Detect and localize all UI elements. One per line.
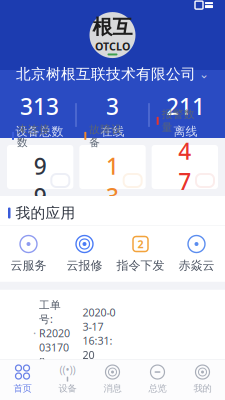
button[interactable]: Scan QR code: [193, 0, 225, 11]
staticText: 471: [178, 136, 191, 226]
staticText: 2: [137, 237, 143, 251]
staticText: 消息: [103, 382, 121, 394]
button[interactable]: 故障设备: [79, 145, 146, 189]
staticText: 未连接数: [17, 123, 50, 149]
staticText: 设备: [58, 382, 76, 394]
button[interactable]: 报警数量: [152, 145, 218, 189]
button[interactable]: 赤焱云: [168, 235, 224, 273]
button[interactable]: 云服务: [0, 235, 56, 273]
button[interactable]: 我的: [180, 364, 225, 394]
staticText: 3: [106, 91, 119, 121]
button[interactable]: 未连接数: [7, 145, 73, 189]
button[interactable]: 总览: [135, 364, 180, 394]
staticText: 报警数量: [162, 108, 195, 134]
button[interactable]: 2: [112, 235, 168, 273]
button[interactable]: ▲: [0, 290, 225, 400]
button[interactable]: 北京树根互联技术有限公司: [10, 58, 215, 83]
button[interactable]: 首页: [0, 364, 45, 394]
staticText: 云服务: [10, 258, 46, 273]
staticText: 设备总数: [15, 124, 63, 139]
button[interactable]: ((•)): [45, 364, 90, 394]
button[interactable]: 云报修: [56, 235, 112, 273]
staticText: ▲: [12, 361, 24, 379]
staticText: 离线: [173, 124, 197, 139]
staticText: 313: [20, 91, 59, 121]
staticText: 首页: [13, 382, 31, 394]
staticText: OTCLO: [95, 39, 130, 53]
button[interactable]: 211: [149, 91, 221, 139]
staticText: 99: [34, 151, 47, 211]
staticText: 工单号: R2020031700···: [39, 373, 70, 400]
staticText: 故障设备: [89, 123, 122, 149]
button[interactable]: 消息: [90, 364, 135, 394]
staticText: ·: [33, 326, 36, 342]
staticText: 2020-03-17 16:31:04: [82, 380, 115, 400]
staticText: 根互: [92, 15, 132, 39]
staticText: 我的: [193, 382, 211, 394]
staticText: 在线: [100, 124, 124, 139]
staticText: 赤焱云: [178, 258, 214, 273]
staticText: 13: [106, 151, 119, 211]
staticText: 211: [166, 91, 205, 121]
staticText: ((•)): [59, 362, 75, 377]
staticText: 总览: [148, 382, 166, 394]
staticText: 工单号: R2020031700···: [39, 299, 70, 369]
button[interactable]: 3: [76, 91, 148, 139]
staticText: ⌄: [199, 67, 209, 81]
staticText: 北京树根互联技术有限公司: [16, 65, 196, 83]
staticText: 2020-03-17 16:31:20: [82, 305, 115, 362]
staticText: 我的应用: [15, 204, 75, 222]
button[interactable]: 313: [3, 91, 75, 139]
staticText: 云报修: [66, 258, 102, 273]
staticText: 指令下发: [116, 258, 164, 273]
